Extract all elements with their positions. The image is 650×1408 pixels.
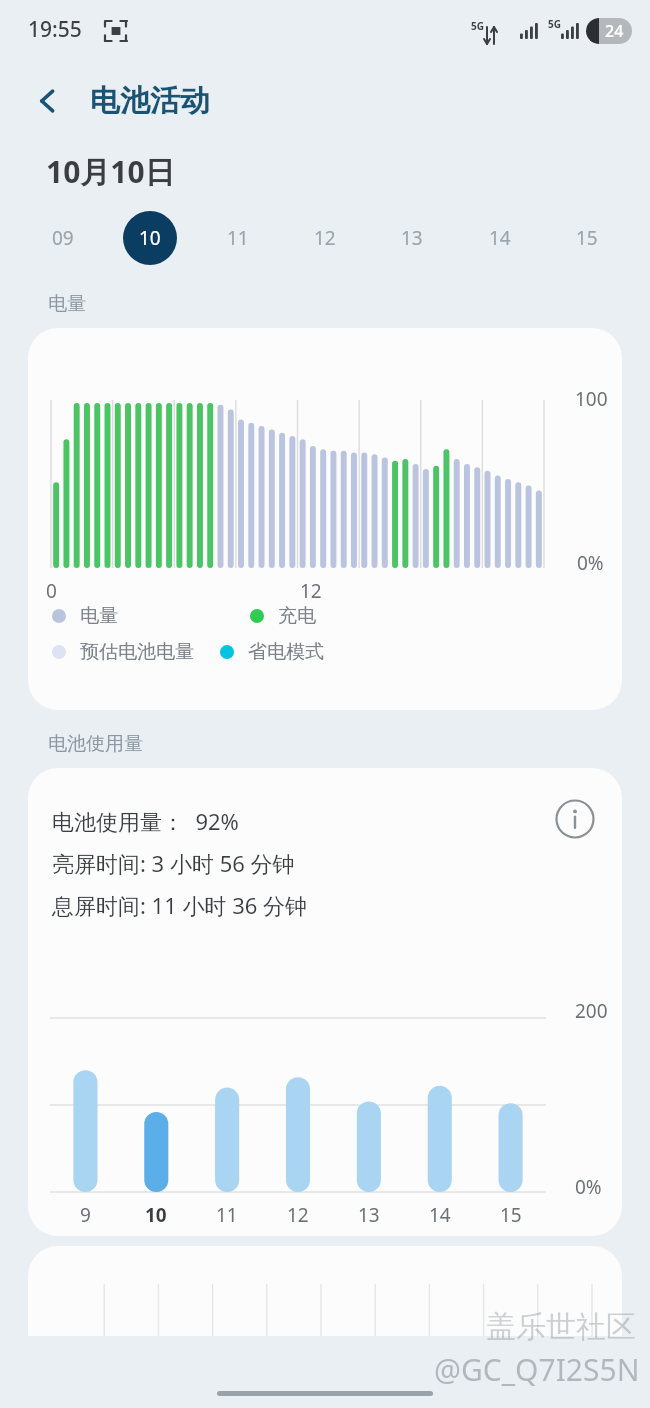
button[interactable]: 11 <box>211 211 265 265</box>
staticText: 充电 <box>278 604 316 628</box>
staticText: 11 <box>216 1202 238 1228</box>
staticText: @GC_Q7I2S5N <box>434 1349 640 1390</box>
button[interactable]: 14 <box>473 211 527 265</box>
staticText: 10 <box>139 225 161 251</box>
staticText: 14 <box>429 1202 451 1228</box>
staticText: 09 <box>52 225 74 251</box>
staticText: 电池活动 <box>90 82 210 120</box>
staticText: 15 <box>576 225 598 251</box>
staticText: 0 <box>46 578 57 604</box>
staticText: 0% <box>577 550 604 576</box>
staticText: 9 <box>80 1202 91 1228</box>
staticText: 电池使用量： 92% <box>52 806 239 836</box>
staticText: 11 <box>227 225 249 251</box>
button[interactable]: Info <box>552 796 598 842</box>
staticText: 13 <box>401 225 423 251</box>
button[interactable]: 09 <box>36 211 90 265</box>
staticText: 14 <box>489 225 511 251</box>
staticText: 13 <box>358 1202 380 1228</box>
staticText: 24 <box>605 20 624 42</box>
button[interactable]: 15 <box>560 211 614 265</box>
staticText: 5G <box>548 17 561 31</box>
staticText: 息屏时间: 11 小时 36 分钟 <box>52 890 308 920</box>
staticText: 100 <box>575 386 608 412</box>
staticText: 12 <box>314 225 336 251</box>
staticText: 电量 <box>80 604 118 628</box>
staticText: 12 <box>300 578 322 604</box>
staticText: 盖乐世社区 <box>486 1308 636 1346</box>
staticText: 10 <box>145 1202 167 1228</box>
staticText: 15 <box>500 1202 522 1228</box>
button[interactable]: 13 <box>385 211 439 265</box>
staticText: 10月10日 <box>46 151 175 192</box>
staticText: 省电模式 <box>248 640 324 664</box>
button[interactable]: Back <box>22 75 74 127</box>
staticText: 预估电池电量 <box>80 640 194 664</box>
staticText: 电池使用量 <box>48 732 143 756</box>
button[interactable]: 10 <box>123 211 177 265</box>
button[interactable]: 12 <box>298 211 352 265</box>
staticText: 12 <box>287 1202 309 1228</box>
staticText: 电量 <box>48 292 86 316</box>
staticText: 19:55 <box>28 15 82 44</box>
staticText: 5G <box>471 19 484 33</box>
staticText: 200 <box>575 998 608 1024</box>
staticText: 0% <box>575 1174 602 1200</box>
staticText: 亮屏时间: 3 小时 56 分钟 <box>52 848 295 878</box>
